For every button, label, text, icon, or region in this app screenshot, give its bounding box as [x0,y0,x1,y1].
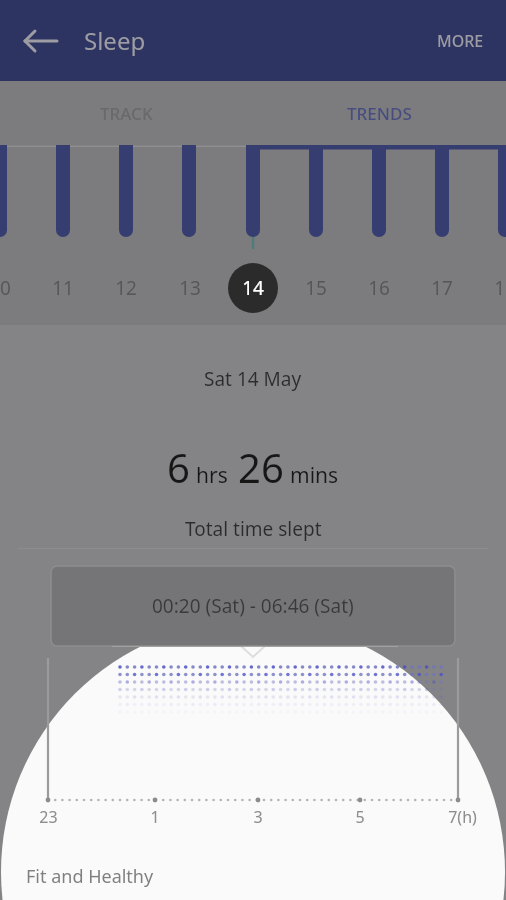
staticText: Sleep [84,24,146,57]
staticText: 1 [150,806,160,828]
button[interactable]: 12 [101,263,151,313]
staticText: 16 [368,275,390,301]
staticText: TRACK [100,102,153,125]
button[interactable]: 00:20 (Sat) - 06:46 (Sat) [51,566,455,646]
staticText: TRENDS [347,102,412,125]
staticText: 18 [494,275,506,301]
staticText: 23 [39,806,58,828]
button[interactable]: TRENDS [253,81,506,145]
staticText: 26 [238,440,284,494]
staticText: 6 [167,440,190,494]
button[interactable]: 10 [0,263,25,313]
button[interactable]: Back [22,21,62,61]
button[interactable]: 14 [228,263,278,313]
staticText: MORE [437,30,484,52]
staticText: 11 [52,275,74,301]
staticText: hrs [196,461,228,490]
staticText: 3 [253,806,263,828]
staticText: 17 [431,275,453,301]
button[interactable]: 17 [417,263,467,313]
staticText: 7(h) [448,806,477,828]
staticText: Sat 14 May [204,366,302,392]
button[interactable]: 11 [38,263,88,313]
staticText: 12 [115,275,137,301]
button[interactable]: 16 [354,263,404,313]
staticText: Total time slept [185,516,322,542]
staticText: 13 [179,275,201,301]
button[interactable]: MORE [415,14,506,68]
staticText: 10 [0,275,11,301]
button[interactable]: 13 [165,263,215,313]
staticText: 15 [305,275,327,301]
button[interactable]: 15 [291,263,341,313]
staticText: mins [290,461,339,490]
staticText: Fit and Healthy [26,864,154,889]
staticText: 5 [355,806,365,828]
button[interactable]: 18 [480,263,506,313]
staticText: 14 [242,275,264,301]
staticText: 00:20 (Sat) - 06:46 (Sat) [152,593,354,619]
